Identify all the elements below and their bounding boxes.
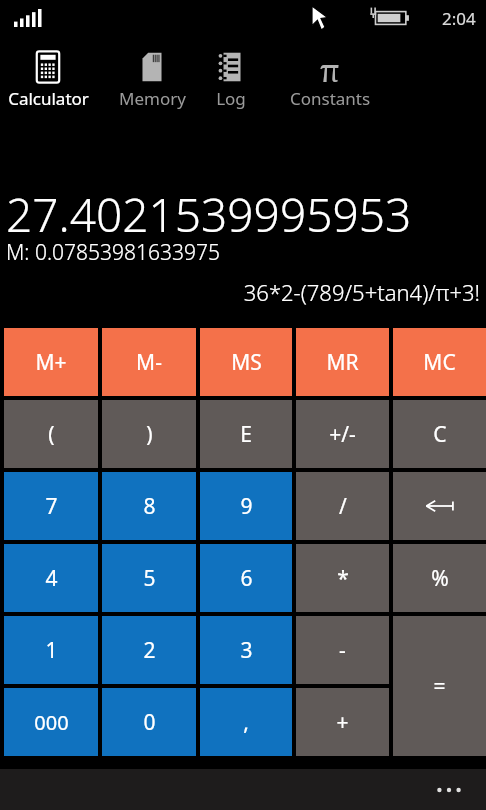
staticText: / xyxy=(339,492,347,521)
staticText: π xyxy=(320,50,340,84)
button[interactable]: MR xyxy=(296,328,389,396)
button[interactable]: MS xyxy=(200,328,292,396)
button[interactable]: * xyxy=(296,544,389,612)
button[interactable]: E xyxy=(200,400,292,468)
button[interactable]: M- xyxy=(102,328,196,396)
staticText: MR xyxy=(326,348,359,377)
button[interactable]: MC xyxy=(393,328,486,396)
button[interactable]: More options xyxy=(0,769,486,810)
staticText: 4 xyxy=(45,564,58,593)
staticText: +/- xyxy=(329,420,356,449)
button[interactable]: 9 xyxy=(200,472,292,540)
staticText: 1 xyxy=(45,636,58,665)
button[interactable]: , xyxy=(200,688,292,756)
button[interactable]: ) xyxy=(102,400,196,468)
button[interactable]: M+ xyxy=(4,328,98,396)
staticText: 8 xyxy=(143,492,156,521)
staticText: 5 xyxy=(143,564,156,593)
staticText: Memory xyxy=(119,87,186,110)
button[interactable]: C xyxy=(393,400,486,468)
staticText: 7 xyxy=(45,492,58,521)
staticText: MC xyxy=(423,348,456,377)
button[interactable]: 7 xyxy=(4,472,98,540)
button[interactable]: Backspace xyxy=(393,472,486,540)
staticText: - xyxy=(339,636,346,665)
staticText: Log xyxy=(216,87,246,110)
staticText: M- xyxy=(136,348,162,377)
button[interactable]: 1 xyxy=(4,616,98,684)
staticText: 27.4021539995953 xyxy=(6,183,412,246)
button[interactable]: % xyxy=(393,544,486,612)
button[interactable]: π xyxy=(282,50,378,110)
button[interactable]: 2 xyxy=(102,616,196,684)
staticText: Calculator xyxy=(8,87,89,110)
staticText: MS xyxy=(231,348,262,377)
staticText: + xyxy=(336,708,349,737)
button[interactable]: 4 xyxy=(4,544,98,612)
staticText: = xyxy=(433,672,446,701)
staticText: E xyxy=(240,420,252,449)
staticText: 000 xyxy=(34,709,69,736)
button[interactable]: 8 xyxy=(102,472,196,540)
button[interactable]: Log xyxy=(202,50,260,110)
staticText: 2:04 xyxy=(442,7,476,30)
button[interactable]: 5 xyxy=(102,544,196,612)
button[interactable]: 000 xyxy=(4,688,98,756)
button[interactable]: ( xyxy=(4,400,98,468)
staticText: 2 xyxy=(143,636,156,665)
staticText: M: 0.07853981633975 xyxy=(6,238,220,267)
staticText: ( xyxy=(48,420,55,449)
button[interactable]: - xyxy=(296,616,389,684)
button[interactable]: 6 xyxy=(200,544,292,612)
staticText: , xyxy=(243,708,249,737)
staticText: Constants xyxy=(290,87,371,110)
button[interactable]: + xyxy=(296,688,389,756)
staticText: 0 xyxy=(143,708,156,737)
staticText: 9 xyxy=(240,492,253,521)
staticText: ) xyxy=(146,420,153,449)
staticText: 3 xyxy=(240,636,253,665)
button[interactable]: 3 xyxy=(200,616,292,684)
staticText: 36*2-(789/5+tan4)/π+3! xyxy=(0,277,480,307)
staticText: 6 xyxy=(240,564,253,593)
button[interactable]: / xyxy=(296,472,389,540)
staticText: % xyxy=(431,564,449,593)
staticText: C xyxy=(433,420,447,449)
button[interactable]: Calculator xyxy=(2,50,94,110)
button[interactable]: +/- xyxy=(296,400,389,468)
staticText: M+ xyxy=(35,348,67,377)
staticText: * xyxy=(337,564,349,593)
button[interactable]: Memory xyxy=(110,50,194,110)
button[interactable]: = xyxy=(393,616,486,756)
button[interactable]: 0 xyxy=(102,688,196,756)
